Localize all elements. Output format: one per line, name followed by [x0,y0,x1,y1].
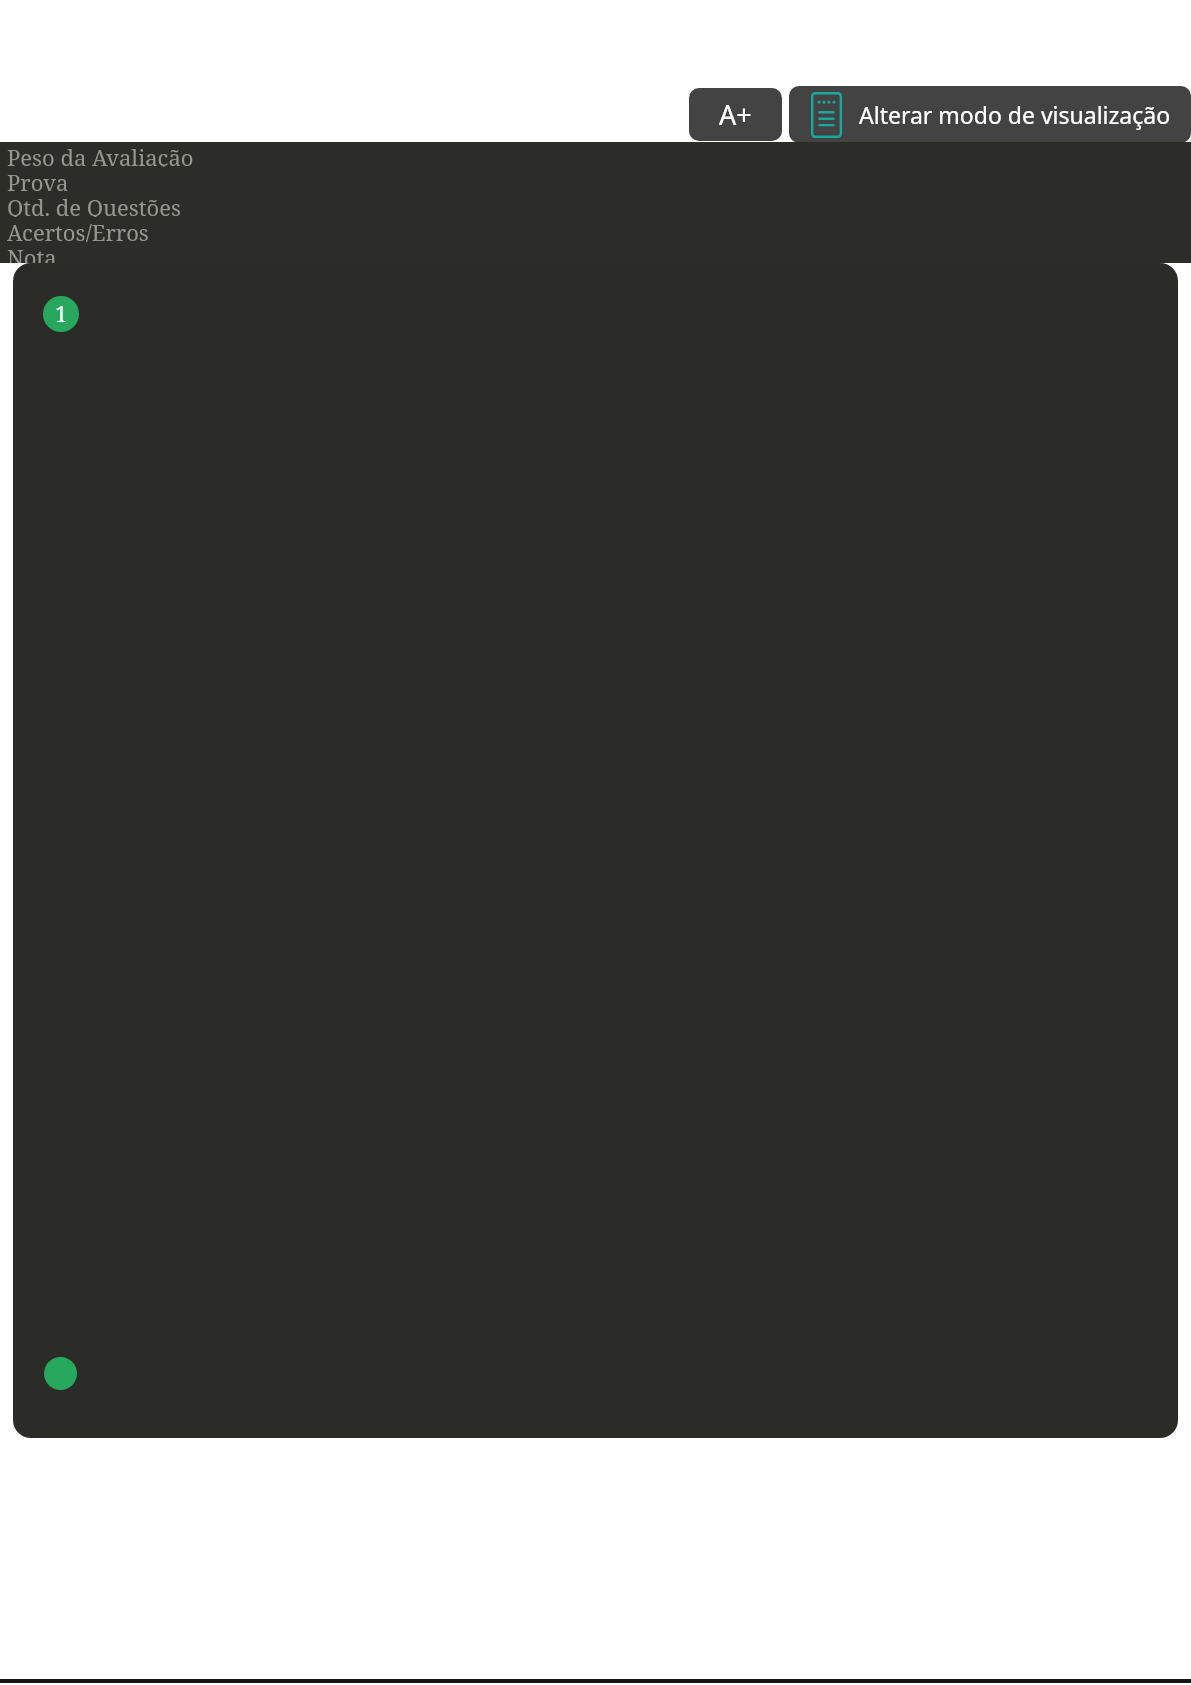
staticText: A+ [719,96,752,133]
staticText: Qtd. de Questões [7,192,181,217]
button[interactable]: 1 [13,263,1178,1438]
staticText: Acertos/Erros [7,217,149,242]
staticText: Prova [7,167,69,192]
staticText: 1 [55,300,67,329]
other: Alterar modo de visualização [811,92,842,138]
button[interactable]: A+ [689,88,782,141]
button[interactable]: Alterar modo de visualização [789,86,1191,143]
staticText: Nota [7,242,57,263]
staticText: Peso da Avaliação [7,142,194,167]
staticText: Alterar modo de visualização [859,99,1171,130]
